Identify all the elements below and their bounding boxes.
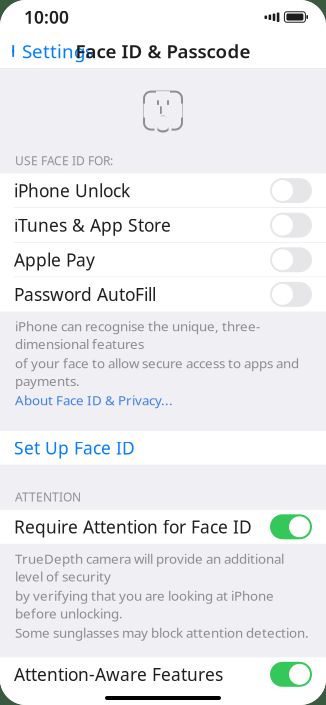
staticText: iPhone will check for attention before d… (15, 697, 302, 705)
staticText: iPhone can recognise the unique, three-d… (15, 317, 260, 353)
staticText: of your face to allow secure access to a… (15, 354, 299, 390)
staticText: by verifying that you are looking at iPh… (15, 587, 274, 622)
button[interactable]: About Face ID & Privacy... (15, 391, 173, 409)
button[interactable]: Require Attention for Face ID (0, 510, 326, 544)
button[interactable]: Apple Pay (0, 243, 326, 277)
button[interactable]: Password AutoFill (0, 277, 326, 311)
staticText: 10:00 (24, 5, 69, 28)
staticText: Face ID & Passcode (75, 39, 250, 63)
staticText: Set Up Face ID (14, 436, 135, 459)
staticText: Password AutoFill (14, 283, 156, 306)
staticText: ATTENTION (15, 489, 81, 505)
staticText: Apple Pay (14, 248, 95, 271)
staticText: About Face ID & Privacy... (15, 391, 173, 409)
staticText: TrueDepth camera will provide an additio… (15, 550, 284, 585)
staticText: iTunes & App Store (14, 214, 171, 237)
staticText: iPhone Unlock (14, 179, 130, 202)
button[interactable]: iPhone Unlock (0, 173, 326, 207)
button[interactable]: Settings (0, 33, 94, 69)
button[interactable]: Attention-Aware Features (0, 657, 326, 691)
staticText: Some sunglasses may block attention dete… (15, 624, 309, 641)
staticText: Require Attention for Face ID (14, 515, 252, 538)
staticText: Settings (22, 39, 94, 63)
button[interactable]: iTunes & App Store (0, 208, 326, 242)
button[interactable]: Set Up Face ID (0, 431, 326, 465)
staticText: USE FACE ID FOR: (15, 153, 113, 168)
staticText: Attention-Aware Features (14, 663, 223, 686)
